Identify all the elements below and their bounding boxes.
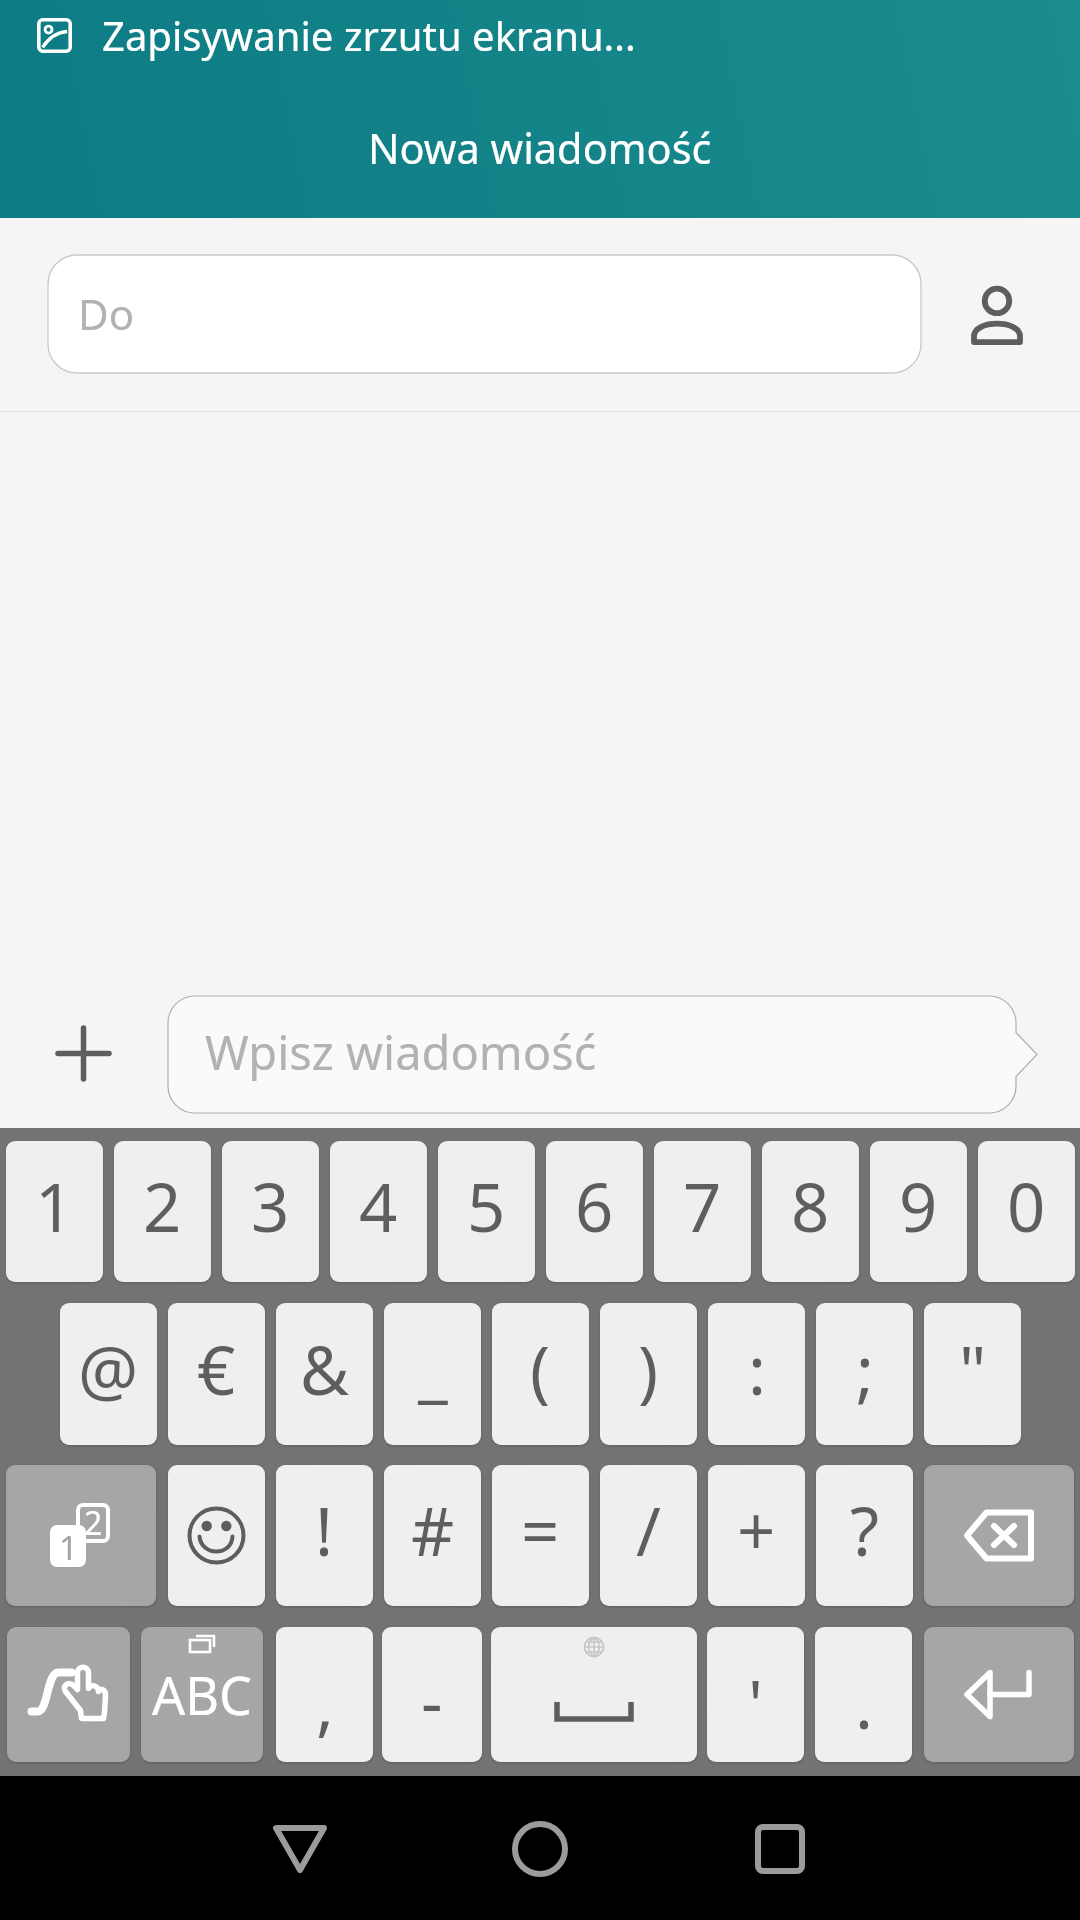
staticText: 0	[1007, 1160, 1046, 1251]
button[interactable]: .	[815, 1627, 912, 1762]
staticText: 6	[575, 1160, 614, 1251]
button[interactable]: 2	[114, 1141, 211, 1282]
staticText: )	[638, 1323, 659, 1414]
button[interactable]: Switch keyboard page	[6, 1465, 156, 1606]
button[interactable]: €	[168, 1303, 265, 1445]
staticText: Do	[78, 285, 135, 342]
button[interactable]: ;	[816, 1303, 913, 1445]
staticText: _	[418, 1323, 448, 1414]
staticText: 2	[143, 1160, 182, 1251]
button[interactable]: Recent apps	[720, 1789, 840, 1909]
staticText: 7	[683, 1160, 722, 1251]
button[interactable]: Add attachment	[28, 998, 138, 1108]
staticText: Nowa wiadomość	[368, 120, 712, 177]
button[interactable]: -	[382, 1627, 482, 1762]
button[interactable]: 3	[222, 1141, 319, 1282]
button[interactable]: "	[924, 1303, 1021, 1445]
button[interactable]: &	[276, 1303, 373, 1445]
button[interactable]: Backspace	[924, 1465, 1074, 1606]
staticText: ABC	[152, 1659, 252, 1730]
button[interactable]: 1	[6, 1141, 103, 1282]
staticText: 5	[467, 1160, 506, 1251]
button[interactable]: ,	[276, 1627, 373, 1762]
staticText: &	[300, 1323, 350, 1414]
button[interactable]: Do	[48, 255, 921, 373]
button[interactable]: (	[492, 1303, 589, 1445]
button[interactable]: 6	[546, 1141, 643, 1282]
staticText: @	[78, 1323, 139, 1414]
staticText: #	[411, 1484, 455, 1575]
staticText: /	[636, 1484, 661, 1575]
staticText: -	[421, 1655, 443, 1746]
staticText: +	[737, 1484, 776, 1575]
staticText: 1	[59, 1525, 78, 1567]
button[interactable]: 7	[654, 1141, 751, 1282]
button[interactable]: Emoji	[168, 1465, 265, 1606]
staticText: 3	[251, 1160, 290, 1251]
staticText: .	[855, 1657, 873, 1748]
staticText: ;	[856, 1323, 874, 1414]
button[interactable]: Wpisz wiadomość	[168, 996, 1038, 1113]
button[interactable]: )	[600, 1303, 697, 1445]
button[interactable]: '	[707, 1627, 804, 1762]
staticText: Wpisz wiadomość	[205, 1020, 597, 1084]
staticText: !	[315, 1484, 334, 1575]
staticText: '	[748, 1657, 764, 1748]
staticText: ?	[850, 1484, 880, 1575]
button[interactable]: #	[384, 1465, 481, 1606]
button[interactable]: 0	[978, 1141, 1075, 1282]
staticText: 2	[84, 1501, 103, 1541]
button[interactable]: +	[708, 1465, 805, 1606]
button[interactable]: 4	[330, 1141, 427, 1282]
button[interactable]: 8	[762, 1141, 859, 1282]
button[interactable]: !	[276, 1465, 373, 1606]
button[interactable]: Back	[240, 1789, 360, 1909]
button[interactable]: Choose contact	[942, 261, 1052, 371]
staticText: (	[530, 1323, 551, 1414]
button[interactable]: Handwriting input	[7, 1627, 130, 1762]
button[interactable]: =	[492, 1465, 589, 1606]
staticText: €	[197, 1323, 236, 1414]
staticText: "	[959, 1323, 987, 1414]
button[interactable]: Space	[491, 1627, 697, 1762]
staticText: 8	[791, 1160, 830, 1251]
staticText: 1	[35, 1160, 74, 1251]
button[interactable]: @	[60, 1303, 157, 1445]
button[interactable]: 5	[438, 1141, 535, 1282]
button[interactable]: 9	[870, 1141, 967, 1282]
staticText: :	[748, 1323, 766, 1414]
button[interactable]: /	[600, 1465, 697, 1606]
staticText: Zapisywanie zrzutu ekranu...	[102, 8, 636, 62]
staticText: ,	[316, 1657, 334, 1748]
button[interactable]: Enter	[924, 1627, 1074, 1762]
staticText: 4	[359, 1160, 398, 1251]
button[interactable]: :	[708, 1303, 805, 1445]
staticText: =	[521, 1484, 560, 1575]
button[interactable]: ABC	[141, 1627, 263, 1762]
staticText: 9	[899, 1160, 938, 1251]
button[interactable]: _	[384, 1303, 481, 1445]
button[interactable]: ?	[816, 1465, 913, 1606]
button[interactable]: Home	[480, 1789, 600, 1909]
